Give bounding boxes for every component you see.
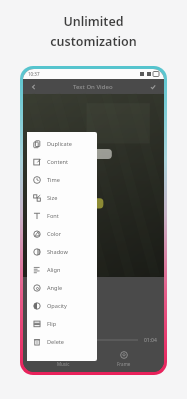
staticText: customization xyxy=(50,33,137,50)
button[interactable]: Frame xyxy=(104,349,144,369)
button[interactable]: Content xyxy=(27,153,97,171)
staticText: Content xyxy=(47,158,69,166)
button[interactable]: Flip xyxy=(27,315,97,333)
staticText: Music xyxy=(57,361,70,367)
staticText: Duplicate xyxy=(47,140,72,148)
button[interactable]: Done xyxy=(148,82,158,92)
staticText: Unlimited xyxy=(63,13,124,30)
button[interactable]: Back xyxy=(29,82,39,92)
button[interactable]: Shadow xyxy=(27,243,97,261)
staticText: Text On Video xyxy=(73,83,113,91)
button[interactable]: Align xyxy=(27,261,97,279)
staticText: Flip xyxy=(47,320,57,328)
button[interactable]: Angle xyxy=(27,279,97,297)
button[interactable]: Delete xyxy=(27,333,97,351)
staticText: Delete xyxy=(47,338,65,346)
button[interactable]: Font xyxy=(27,207,97,225)
button[interactable]: Size xyxy=(27,189,97,207)
staticText: Shadow xyxy=(47,248,68,256)
staticText: Angle xyxy=(47,284,63,292)
staticText: Color xyxy=(47,230,62,238)
staticText: 10:37 xyxy=(28,71,40,77)
button[interactable]: Opacity xyxy=(27,297,97,315)
staticText: Font xyxy=(47,212,59,220)
button[interactable]: Color xyxy=(27,225,97,243)
staticText: Time xyxy=(47,176,60,184)
staticText: Frame xyxy=(117,361,131,367)
button[interactable]: Time xyxy=(27,171,97,189)
staticText: 01:04 xyxy=(144,337,157,344)
button[interactable]: Music xyxy=(43,349,83,369)
staticText: Opacity xyxy=(47,302,67,310)
button[interactable]: Duplicate xyxy=(27,135,97,153)
staticText: Align xyxy=(47,266,61,274)
staticText: Size xyxy=(47,194,58,202)
